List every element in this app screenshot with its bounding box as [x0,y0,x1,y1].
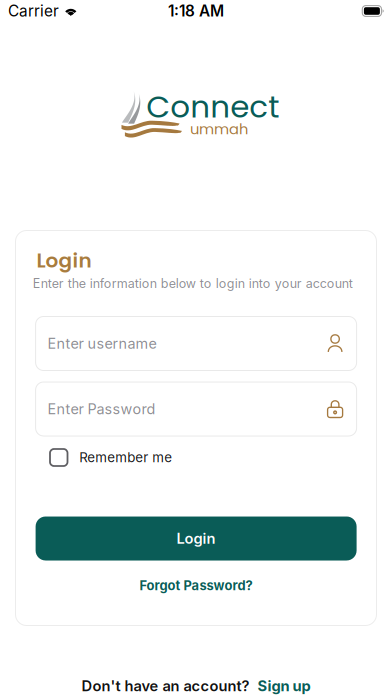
staticText: Enter username [48,335,157,352]
staticText: Enter the information below to login int… [33,276,353,291]
button[interactable]: Remember me [50,446,270,468]
staticText: Don't have an account? [81,677,249,695]
staticText: Remember me [79,449,172,465]
staticText: Enter Password [48,400,156,418]
staticText: 1:18 AM [168,2,224,20]
button[interactable]: Sign up [257,677,310,695]
button[interactable]: Login [36,516,357,560]
staticText: Carrier [8,2,59,20]
button[interactable]: Forgot Password? [36,575,357,595]
staticText: Login [177,530,216,547]
staticText: Forgot Password? [140,578,253,593]
staticText: Connect [146,85,279,128]
button[interactable]: Enter Password [36,382,357,436]
staticText: Login [36,246,91,274]
staticText: Sign up [257,677,310,695]
staticText: ummah [190,119,248,139]
button[interactable]: Enter username [36,316,357,370]
